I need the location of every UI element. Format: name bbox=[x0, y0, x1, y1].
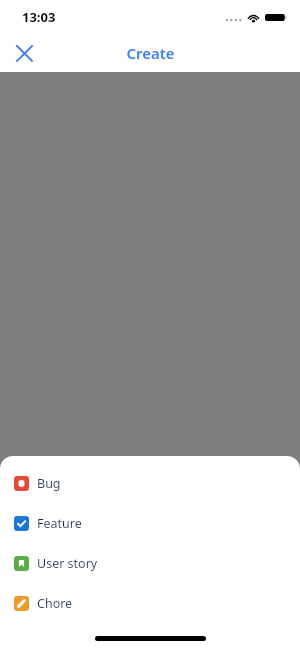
staticText: 13:03 bbox=[22, 8, 56, 26]
staticText: Feature bbox=[37, 515, 82, 532]
staticText: Bug bbox=[37, 475, 61, 492]
button[interactable]: Feature bbox=[0, 503, 300, 543]
staticText: Chore bbox=[37, 595, 73, 612]
button[interactable] bbox=[0, 72, 300, 650]
button[interactable]: Chore bbox=[0, 583, 300, 623]
staticText: User story bbox=[37, 555, 98, 572]
button[interactable]: User story bbox=[0, 543, 300, 583]
button[interactable]: Bug bbox=[0, 463, 300, 503]
button[interactable]: Close bbox=[7, 36, 41, 70]
staticText: Create bbox=[126, 43, 175, 63]
